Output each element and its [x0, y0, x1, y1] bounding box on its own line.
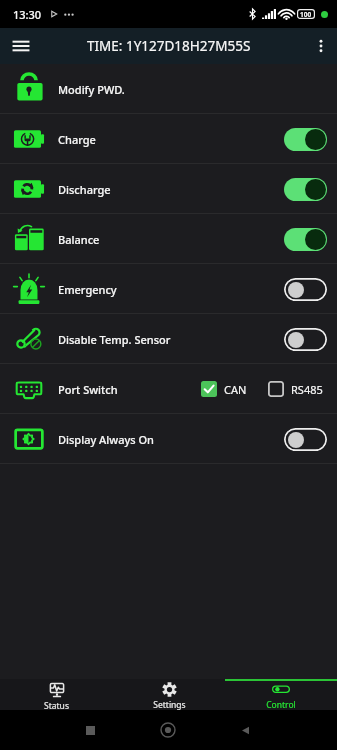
- button[interactable]: Toggle off: [284, 328, 327, 351]
- staticText: Settings: [153, 699, 186, 710]
- button[interactable]: Toggle off: [284, 278, 327, 301]
- button[interactable]: Disable Temp. Sensor: [0, 314, 337, 364]
- button[interactable]: Emergency: [0, 264, 337, 314]
- staticText: Status: [44, 700, 69, 710]
- button[interactable]: Control: [225, 679, 337, 710]
- button[interactable]: Charge: [0, 114, 337, 164]
- staticText: 13:30: [13, 7, 42, 22]
- button[interactable]: Toggle on: [284, 128, 327, 151]
- staticText: RS485: [291, 382, 323, 397]
- button[interactable]: Toggle off: [284, 428, 327, 451]
- staticText: Charge: [58, 132, 96, 147]
- staticText: Disable Temp. Sensor: [58, 332, 171, 347]
- button[interactable]: Toggle on: [284, 228, 327, 251]
- staticText: Control: [266, 699, 296, 710]
- staticText: Modify PWD.: [58, 82, 125, 97]
- button[interactable]: Menu: [0, 28, 42, 64]
- button[interactable]: Toggle on: [284, 178, 327, 201]
- button[interactable]: Display Always On: [0, 414, 337, 464]
- staticText: TIME: 1Y127D18H27M55S: [87, 37, 251, 55]
- staticText: Emergency: [58, 282, 117, 297]
- button[interactable]: Status: [0, 679, 113, 710]
- button[interactable]: RS485: [268, 381, 323, 397]
- staticText: Display Always On: [58, 432, 154, 447]
- staticText: CAN: [224, 382, 247, 397]
- staticText: Discharge: [58, 182, 111, 197]
- staticText: Port Switch: [58, 382, 118, 397]
- button[interactable]: Discharge: [0, 164, 337, 214]
- button[interactable]: More options: [305, 28, 337, 64]
- button[interactable]: Modify PWD.: [0, 64, 337, 114]
- button[interactable]: Port Switch: [0, 364, 337, 414]
- button[interactable]: Balance: [0, 214, 337, 264]
- staticText: 100: [300, 10, 312, 19]
- button[interactable]: Settings: [113, 679, 225, 710]
- button[interactable]: CAN: [201, 381, 247, 397]
- staticText: Balance: [58, 232, 100, 247]
